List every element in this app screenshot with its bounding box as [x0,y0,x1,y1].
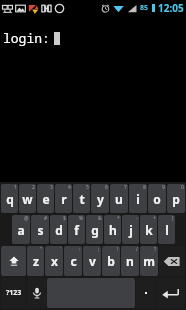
button[interactable]: z [27,246,44,276]
staticText: / [136,246,138,253]
staticText: u [115,191,123,207]
staticText: c [70,253,77,269]
staticText: 5 [86,184,89,191]
staticText: 3 [50,184,53,191]
staticText: ?123 [6,288,22,298]
button[interactable]: k [140,215,157,244]
button[interactable]: Period [136,278,155,308]
button[interactable]: w [19,184,36,213]
staticText: k [145,222,153,238]
button[interactable]: j [122,215,139,244]
button[interactable]: d [50,215,67,244]
staticText: f [74,222,79,238]
staticText: ? [154,246,157,253]
staticText: y [97,191,104,207]
staticText: - [136,215,138,222]
staticText: s [37,222,44,238]
staticText: p [172,191,180,207]
staticText: r [61,191,67,207]
staticText: 2 [32,184,35,191]
staticText: : [79,246,81,253]
button[interactable]: r [55,184,72,213]
staticText: + [153,215,156,222]
staticText: 6 [105,184,108,191]
button[interactable]: u [110,184,128,213]
staticText: " [40,246,43,253]
staticText: 8 [143,184,146,191]
button[interactable]: m [140,246,158,276]
button[interactable]: o [148,184,166,213]
button[interactable]: s [31,215,49,244]
button[interactable]: n [121,246,139,276]
staticText: 7 [124,184,127,191]
button[interactable]: l [158,215,175,244]
staticText: & [98,215,102,222]
staticText: * [117,215,120,222]
staticText: 12:05 [158,1,184,15]
button[interactable]: Shift [1,246,26,276]
button[interactable]: g [86,215,103,244]
staticText: 0 [181,184,184,191]
button[interactable]: f [68,215,85,244]
staticText: 85 [140,3,149,13]
button[interactable]: b [102,246,120,276]
button[interactable]: i [129,184,147,213]
staticText: ' [60,246,62,253]
staticText: ! [117,246,119,253]
button[interactable]: v [83,246,101,276]
staticText: # [44,215,48,222]
staticText: j [129,222,133,238]
staticText: ( [172,215,174,222]
button[interactable]: t [73,184,90,213]
staticText: t [79,191,85,207]
button[interactable]: Backspace [159,246,185,276]
button[interactable]: h [104,215,121,244]
staticText: 1 [14,184,17,191]
staticText: v [89,253,96,269]
staticText: i [136,191,140,207]
staticText: a [17,222,25,238]
staticText: 4 [68,184,71,191]
button[interactable]: p [167,184,185,213]
staticText: o [153,191,161,207]
staticText: % [79,215,84,222]
staticText: login: [3,29,50,47]
staticText: @ [24,215,29,222]
staticText: w [22,191,33,207]
button[interactable]: Symbols [1,278,26,308]
staticText: n [126,253,134,269]
staticText: g [91,222,99,238]
button[interactable]: Enter [156,278,185,308]
staticText: e [42,191,50,207]
button[interactable]: x [45,246,63,276]
button[interactable]: q [1,184,18,213]
button[interactable]: c [64,246,82,276]
staticText: 9 [162,184,165,191]
staticText: b [107,253,115,269]
button[interactable]: y [91,184,109,213]
staticText: x [51,253,58,269]
staticText: h [109,222,117,238]
staticText: m [143,253,155,269]
button[interactable]: a [12,215,30,244]
staticText: d [55,222,63,238]
staticText: z [33,253,39,269]
staticText: l [165,222,169,238]
staticText: q [6,191,14,207]
button[interactable]: Voice input [27,278,46,308]
staticText: ; [98,246,100,253]
button[interactable]: e [37,184,54,213]
staticText: $ [63,215,66,222]
